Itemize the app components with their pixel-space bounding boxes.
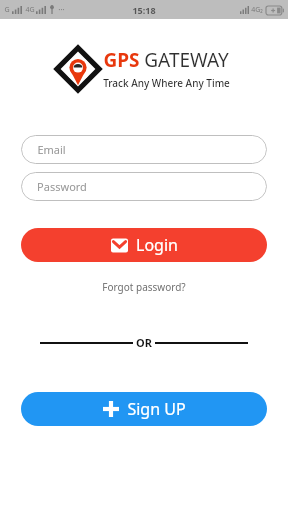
staticText: Forgot password? <box>102 280 186 294</box>
staticText: Sign UP <box>127 398 186 420</box>
staticText: 4G <box>25 5 35 15</box>
staticText: Email <box>37 142 66 157</box>
button[interactable]: Password <box>21 172 267 201</box>
staticText: 15:18 <box>132 4 156 16</box>
staticText: OR <box>136 335 152 350</box>
staticText: Password <box>37 179 87 194</box>
button[interactable]: Sign UP <box>21 392 267 426</box>
staticText: GPS <box>103 47 140 73</box>
button[interactable]: Login <box>21 228 267 262</box>
staticText: ··· <box>58 4 65 15</box>
staticText: G <box>4 5 10 15</box>
staticText: Track Any Where Any Time <box>103 76 230 90</box>
staticText: GATEWAY <box>144 47 229 73</box>
button[interactable]: Forgot password? <box>0 280 288 294</box>
staticText: 4G₂ <box>251 5 263 15</box>
button[interactable]: Email <box>21 135 267 164</box>
staticText: Login <box>136 234 178 256</box>
